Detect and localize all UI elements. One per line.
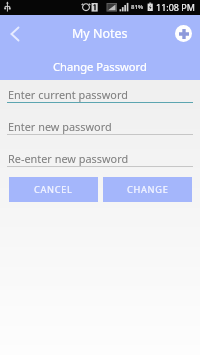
staticText: Enter new password xyxy=(8,119,112,134)
staticText: Change Password xyxy=(53,59,147,74)
button[interactable]: CHANGE xyxy=(103,177,192,202)
button[interactable]: CANCEL xyxy=(9,177,98,202)
staticText: 11:08 PM xyxy=(156,1,195,13)
staticText: Re-enter new password xyxy=(8,151,129,166)
staticText: CANCEL xyxy=(34,183,73,196)
staticText: My Notes xyxy=(72,25,128,42)
staticText: 81% xyxy=(131,3,144,11)
staticText: Enter current password xyxy=(8,87,128,102)
staticText: CHANGE xyxy=(127,183,169,196)
button[interactable]: Back xyxy=(0,15,29,52)
button[interactable]: Add note xyxy=(175,25,192,42)
